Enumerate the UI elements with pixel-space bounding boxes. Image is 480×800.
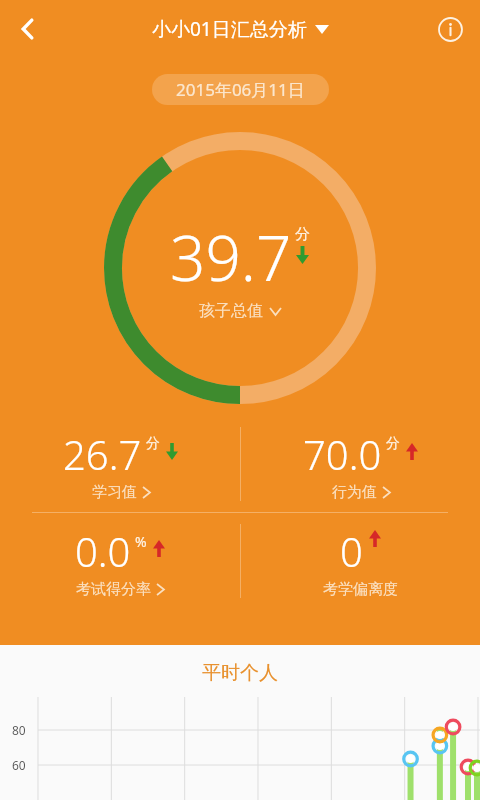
staticText: 学习值 (92, 483, 137, 502)
button[interactable]: Info (428, 7, 472, 51)
staticText: 分 (386, 435, 400, 453)
button[interactable]: Back (4, 5, 52, 53)
staticText: 26.7 (63, 427, 142, 481)
staticText: 孩子总值 (199, 301, 263, 321)
button[interactable]: 孩子总值 (199, 301, 281, 321)
staticText: 考试得分率 (76, 580, 151, 599)
button[interactable]: 0.0 (75, 524, 165, 599)
staticText: 39.7 (170, 215, 292, 299)
staticText: 行为值 (332, 483, 377, 502)
staticText: 平时个人 (202, 661, 278, 685)
staticText: 70.0 (303, 427, 382, 481)
staticText: 小小01日汇总分析 (152, 16, 307, 42)
staticText: 2015年06月11日 (176, 78, 305, 101)
staticText: 0 (340, 524, 363, 578)
staticText: 80 (12, 722, 26, 738)
staticText: % (135, 532, 147, 551)
staticText: 分 (146, 435, 160, 453)
staticText: 0.0 (75, 524, 131, 578)
button[interactable]: 0 (323, 524, 398, 599)
staticText: 考学偏离度 (323, 580, 398, 599)
button[interactable]: 小小01日汇总分析 (146, 16, 335, 42)
button[interactable]: 70.0 (303, 427, 418, 502)
button[interactable]: 2015年06月11日 (152, 74, 329, 105)
button[interactable]: 26.7 (63, 427, 178, 502)
staticText: 分 (295, 225, 310, 244)
staticText: 60 (12, 757, 26, 773)
